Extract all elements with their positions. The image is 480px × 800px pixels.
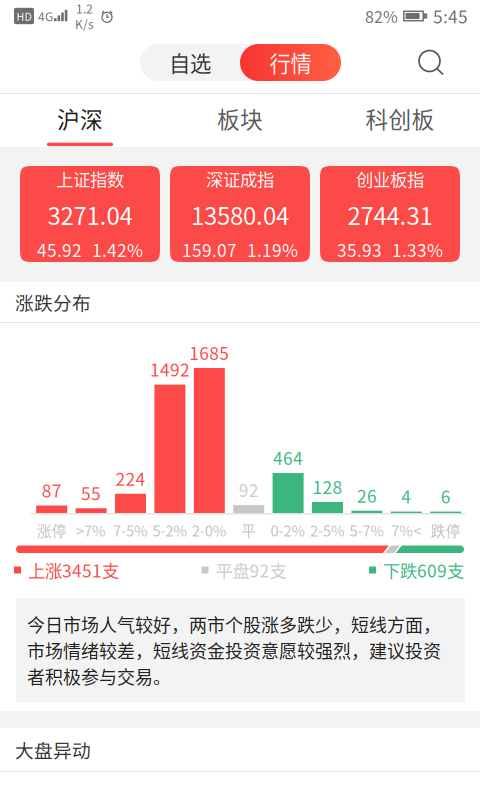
staticText: 2-5% [310,519,345,541]
staticText: 464 [273,445,303,470]
staticText: 行情 [269,47,311,78]
staticText: 1492 [150,356,190,382]
staticText: 上涨3451支 [28,557,119,583]
staticText: 2-0% [192,519,227,541]
staticText: 87 [42,477,62,502]
staticText: 26 [357,483,377,508]
staticText: 2744.31 [347,197,432,232]
staticText: 35.93 [337,237,382,262]
staticText: 0-2% [271,519,306,541]
staticText: 涨停 [37,519,67,541]
staticText: 自选 [169,47,211,78]
staticText: 3271.04 [47,197,132,232]
staticText: 45.92 [37,237,82,262]
staticText: 5-2% [152,519,187,541]
staticText: 今日市场人气较好，两市个股涨多跌少，短线方面，市场情绪较差，短线资金投资意愿较强… [27,611,441,689]
staticText: 1.2 [76,0,93,17]
staticText: 13580.04 [191,197,289,232]
staticText: 涨跌分布 [15,288,91,315]
staticText: 6 [441,483,451,509]
staticText: HD [16,8,31,24]
button[interactable]: 上证指数 [20,166,160,262]
staticText: 7%< [391,519,421,541]
staticText: 128 [312,474,342,499]
button[interactable]: 沪深 [0,94,160,147]
staticText: 深证成指 [206,166,274,191]
button[interactable]: 科创板 [320,94,480,147]
staticText: 平盘92支 [215,557,286,583]
button[interactable]: 自选 [140,44,240,81]
staticText: 板块 [217,102,263,135]
staticText: 7-5% [113,519,148,541]
button[interactable]: 创业板指 [320,166,460,262]
staticText: 1.19% [247,237,298,262]
button[interactable]: 行情 [240,44,341,81]
button[interactable]: Search [401,32,461,93]
staticText: 科创板 [365,102,434,135]
staticText: 92 [239,477,259,502]
button[interactable]: 深证成指 [170,166,310,262]
staticText: 4 [401,483,411,509]
staticText: 1.42% [92,237,143,262]
staticText: 1.33% [392,237,443,262]
staticText: 下跌609支 [383,557,464,583]
staticText: 159.07 [182,237,237,262]
staticText: 平 [241,519,256,541]
staticText: 224 [115,466,145,491]
staticText: >7% [76,519,106,541]
button[interactable]: 板块 [160,94,320,147]
staticText: 5:45 [433,3,468,29]
staticText: 创业板指 [356,166,424,191]
staticText: 沪深 [57,102,103,135]
staticText: 82% [365,4,398,28]
staticText: 1685 [189,340,229,365]
staticText: 5-7% [349,519,384,541]
staticText: 大盘异动 [15,736,91,763]
staticText: 上证指数 [56,166,124,191]
staticText: 55 [81,480,101,505]
staticText: 跌停 [431,519,461,541]
staticText: K/s [75,15,94,32]
staticText: 4G [38,7,53,25]
